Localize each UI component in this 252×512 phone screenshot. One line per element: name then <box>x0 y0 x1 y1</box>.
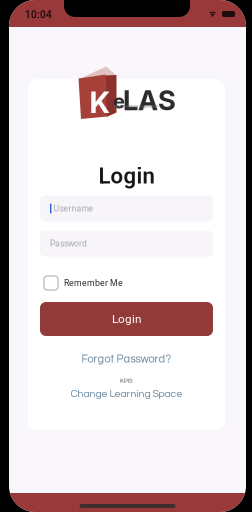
staticText: 10:04 <box>25 9 52 21</box>
staticText: Remember Me <box>64 278 123 288</box>
button[interactable]: Password <box>40 230 213 256</box>
staticText: KPEI eLearning Application <box>114 104 158 108</box>
staticText: KPEI <box>120 377 133 384</box>
staticText: Login <box>112 312 141 326</box>
staticText: Username <box>53 203 93 213</box>
staticText: K <box>89 85 110 120</box>
staticText: e <box>113 89 125 113</box>
button[interactable]: Username <box>40 195 213 221</box>
staticText: LAS <box>123 84 176 117</box>
button[interactable]: Login <box>40 302 213 336</box>
button[interactable]: Forgot Password? <box>81 353 171 365</box>
staticText: Login <box>98 163 154 189</box>
button[interactable]: Remember Me <box>44 276 123 290</box>
button[interactable]: Change Learning Space <box>70 388 182 399</box>
staticText: Password <box>50 238 87 248</box>
staticText: Forgot Password? <box>81 353 171 365</box>
staticText: Change Learning Space <box>70 388 182 399</box>
